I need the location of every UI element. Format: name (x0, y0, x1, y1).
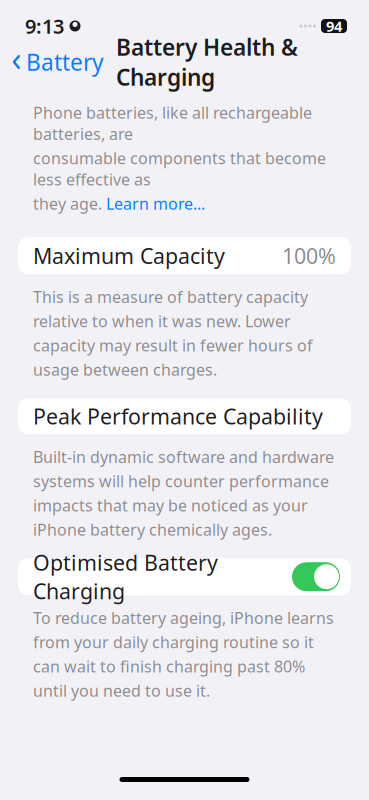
staticText: Built-in dynamic software and hardware s… (33, 446, 334, 540)
button[interactable]: Maximum Capacity (18, 237, 351, 274)
button[interactable]: Learn more... (106, 193, 205, 214)
staticText: 9:13 (25, 13, 64, 39)
button[interactable]: Battery (0, 41, 104, 83)
staticText: Phone batteries, like all rechargeable b… (33, 102, 312, 144)
button[interactable]: Optimised Battery Charging (18, 558, 351, 595)
staticText: Learn more... (106, 193, 205, 214)
button[interactable]: Peak Performance Capability (18, 398, 351, 434)
staticText: 100% (282, 242, 336, 270)
staticText: 94 (326, 16, 342, 36)
staticText: Peak Performance Capability (33, 402, 323, 430)
staticText: Battery (26, 47, 104, 77)
staticText: consumable components that become less e… (33, 147, 326, 190)
staticText: To reduce battery ageing, iPhone learns … (33, 607, 334, 701)
staticText: Optimised Battery Charging (33, 548, 218, 605)
staticText: they age. (33, 193, 102, 214)
staticText: Battery Health & Charging (116, 32, 298, 92)
staticText: This is a measure of battery capacity re… (33, 286, 313, 380)
staticText: Maximum Capacity (33, 242, 225, 270)
